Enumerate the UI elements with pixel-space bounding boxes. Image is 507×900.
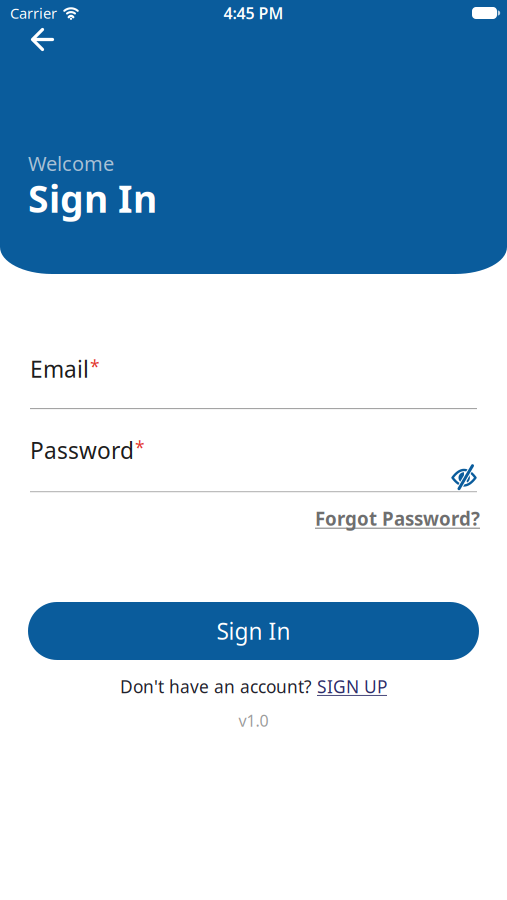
staticText: Forgot Password? [315,506,480,531]
staticText: Sign In [216,616,290,646]
button[interactable]: Back [0,21,54,51]
button[interactable]: Sign In [28,602,479,660]
staticText: Don't have an account? [120,675,317,698]
staticText: SIGN UP [317,675,387,698]
staticText: Sign In [28,173,157,223]
staticText: * [90,355,100,378]
button[interactable]: Show password [451,466,477,492]
staticText: Email [30,354,89,384]
staticText: Password [30,435,134,465]
staticText: 4:45 PM [223,2,283,24]
button[interactable]: Forgot Password? [315,506,480,531]
staticText: Welcome [28,150,114,176]
button[interactable]: SIGN UP [317,675,387,698]
staticText: Carrier [10,3,57,23]
staticText: v1.0 [238,710,268,731]
staticText: * [135,436,145,459]
